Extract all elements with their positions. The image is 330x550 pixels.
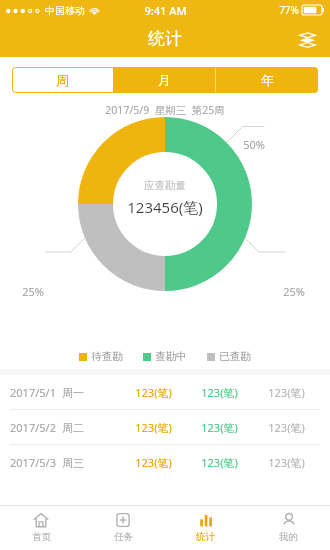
staticText: 123(笔) [268,455,305,470]
staticText: 中国移动 [45,4,85,17]
staticText: 首页 [32,531,51,543]
button[interactable]: 2017/5/1 [0,375,330,409]
button[interactable]: 月 [113,67,215,93]
staticText: 123(笔) [135,455,172,470]
staticText: 123(笔) [201,385,238,400]
staticText: 统计 [148,28,182,49]
staticText: 周三 [62,456,84,470]
staticText: 123(笔) [135,385,172,400]
button[interactable]: 2017/5/2 [0,410,330,444]
staticText: 周 [56,72,69,88]
staticText: 77% [279,3,299,17]
staticText: 统计 [196,531,215,543]
button[interactable]: 统计 [164,506,247,550]
staticText: 123456(笔) [127,197,203,217]
button[interactable]: 我的 [247,506,330,550]
staticText: 123(笔) [135,420,172,435]
button[interactable]: 首页 [0,506,82,550]
button[interactable]: 年 [216,67,318,93]
staticText: 待查勘 [91,350,123,363]
button[interactable]: Layers [292,24,322,54]
staticText: 50% [243,137,265,152]
button[interactable]: 2017/5/3 [0,445,330,479]
button[interactable]: 任务 [82,506,164,550]
staticText: 任务 [114,531,133,543]
staticText: 25% [22,284,44,299]
staticText: 9:41 AM [144,3,187,18]
staticText: 123(笔) [268,420,305,435]
staticText: 月 [158,72,171,88]
staticText: 应查勘量 [144,179,186,192]
staticText: 2017/5/9 星期三 第25周 [105,103,225,117]
staticText: 2017/5/3 [10,455,56,470]
staticText: 2017/5/1 [10,385,56,400]
staticText: 2017/5/2 [10,420,56,435]
staticText: 我的 [279,531,298,543]
staticText: 周二 [62,421,84,435]
staticText: 123(笔) [201,420,238,435]
staticText: 周一 [62,386,84,400]
button[interactable]: 周 [12,67,113,93]
staticText: 年 [261,72,274,88]
staticText: 查勘中 [155,350,187,363]
staticText: 已查勘 [219,350,251,363]
staticText: 123(笔) [201,455,238,470]
staticText: 25% [283,284,305,299]
staticText: 123(笔) [268,385,305,400]
